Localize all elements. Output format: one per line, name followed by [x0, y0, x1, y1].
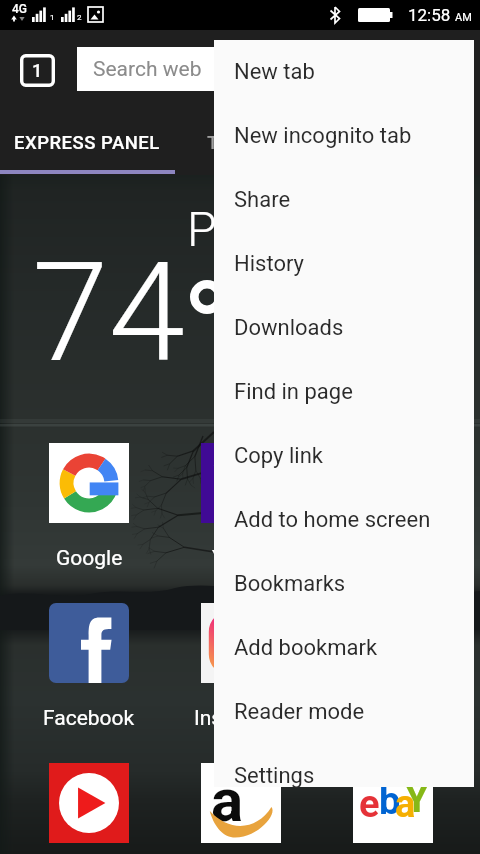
staticText: Yahoo [212, 546, 271, 571]
button[interactable]: Bookmarks [214, 552, 474, 616]
staticText: Settings [234, 763, 315, 789]
staticText: a [211, 765, 244, 835]
button[interactable]: EXPRESS PANEL [0, 110, 174, 175]
staticText: Search web [93, 57, 202, 82]
button[interactable]: History [214, 232, 474, 296]
staticText: 2 [77, 13, 82, 22]
button[interactable]: New tab [214, 40, 474, 104]
staticText: a [395, 782, 416, 827]
button[interactable]: Add to home screen [214, 488, 474, 552]
staticText: AM [455, 11, 472, 24]
button[interactable]: Instagram [175, 603, 307, 733]
staticText: Share [234, 187, 291, 213]
button[interactable]: TOP SITES [174, 110, 334, 175]
button[interactable]: Twitter [327, 603, 459, 733]
staticText: New tab [234, 59, 315, 85]
staticText: b [379, 779, 401, 824]
button[interactable]: Yahoo [175, 443, 307, 573]
staticText: Add bookmark [234, 635, 378, 661]
staticText: Copy link [234, 443, 323, 469]
staticText: Add to home screen [234, 507, 431, 533]
button[interactable]: Tabs [20, 54, 55, 87]
button[interactable]: Settings [214, 744, 474, 808]
staticText: 1 [50, 13, 55, 22]
button[interactable]: e [327, 763, 459, 854]
button[interactable]: Facebook [23, 603, 155, 733]
button[interactable]: Google [23, 443, 155, 573]
button[interactable]: a [175, 763, 307, 854]
staticText: Phoenix [187, 201, 356, 257]
button[interactable]: Downloads [214, 296, 474, 360]
staticText: Twitter [361, 706, 426, 731]
button[interactable]: Add bookmark [214, 616, 474, 680]
button[interactable]: Reader mode [214, 680, 474, 744]
button[interactable]: New incognito tab [214, 104, 474, 168]
staticText: Bookmarks [234, 571, 346, 597]
button[interactable]: Share [214, 168, 474, 232]
staticText: 1 [32, 60, 43, 81]
staticText: Downloads [234, 315, 344, 341]
staticText: Instagram [194, 706, 289, 731]
staticText: Find in page [234, 379, 353, 405]
staticText: 74 [32, 232, 186, 394]
staticText: Reader mode [234, 699, 365, 725]
button[interactable]: YouTube [23, 763, 155, 854]
staticText: Y [405, 777, 429, 822]
staticText: Facebook [43, 706, 135, 731]
button[interactable]: Wikipedia [327, 443, 459, 573]
staticText: 12:58 [408, 5, 451, 25]
staticText: 4G [12, 2, 27, 16]
button[interactable]: Search web [77, 47, 467, 91]
button[interactable]: Find in page [214, 360, 474, 424]
staticText: EXPRESS PANEL [14, 132, 160, 154]
button[interactable]: Copy link [214, 424, 474, 488]
staticText: TOP SITES [207, 132, 301, 154]
staticText: Google [56, 546, 123, 571]
staticText: e [359, 782, 380, 827]
staticText: History [234, 251, 304, 277]
staticText: New incognito tab [234, 123, 412, 149]
